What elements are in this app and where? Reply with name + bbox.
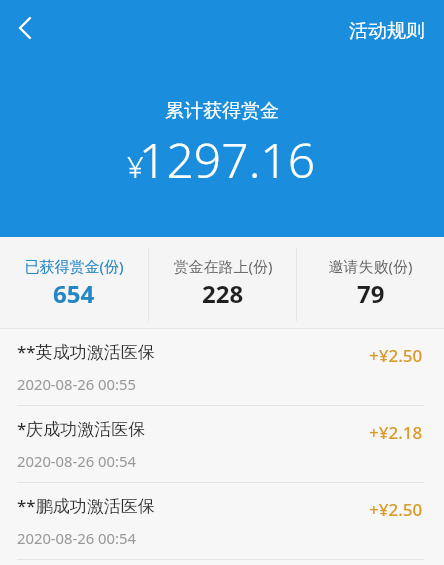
staticText: *庆成功激活医保 (17, 417, 146, 440)
button[interactable]: *庆成功激活医保 (0, 406, 444, 482)
button[interactable]: 赏金在路上(份) (149, 237, 296, 328)
button[interactable]: **鹏成功激活医保 (0, 483, 444, 559)
staticText: **鹏成功激活医保 (17, 494, 155, 517)
staticText: 1297.16 (139, 127, 316, 192)
staticText: 79 (357, 277, 385, 310)
button[interactable]: Back (3, 6, 47, 50)
staticText: 活动规则 (349, 19, 425, 43)
staticText: ¥ (127, 147, 144, 186)
staticText: +¥2.50 (369, 498, 423, 521)
staticText: 邀请失败(份) (328, 256, 413, 276)
staticText: 228 (202, 277, 244, 310)
staticText: +¥2.50 (369, 344, 423, 367)
staticText: 2020-08-26 00:55 (17, 374, 136, 394)
staticText: +¥2.18 (369, 421, 423, 444)
staticText: 2020-08-26 00:54 (17, 451, 136, 471)
button[interactable]: 已获得赏金(份) (0, 237, 148, 328)
staticText: 累计获得赏金 (165, 99, 279, 123)
staticText: 2020-08-26 00:54 (17, 528, 136, 548)
button[interactable]: 邀请失败(份) (297, 237, 444, 328)
button[interactable]: **英成功激活医保 (0, 329, 444, 405)
staticText: **英成功激活医保 (17, 340, 155, 363)
staticText: 赏金在路上(份) (173, 256, 273, 276)
staticText: 已获得赏金(份) (24, 256, 124, 276)
staticText: 654 (53, 277, 95, 310)
button[interactable]: 活动规则 (339, 13, 444, 49)
